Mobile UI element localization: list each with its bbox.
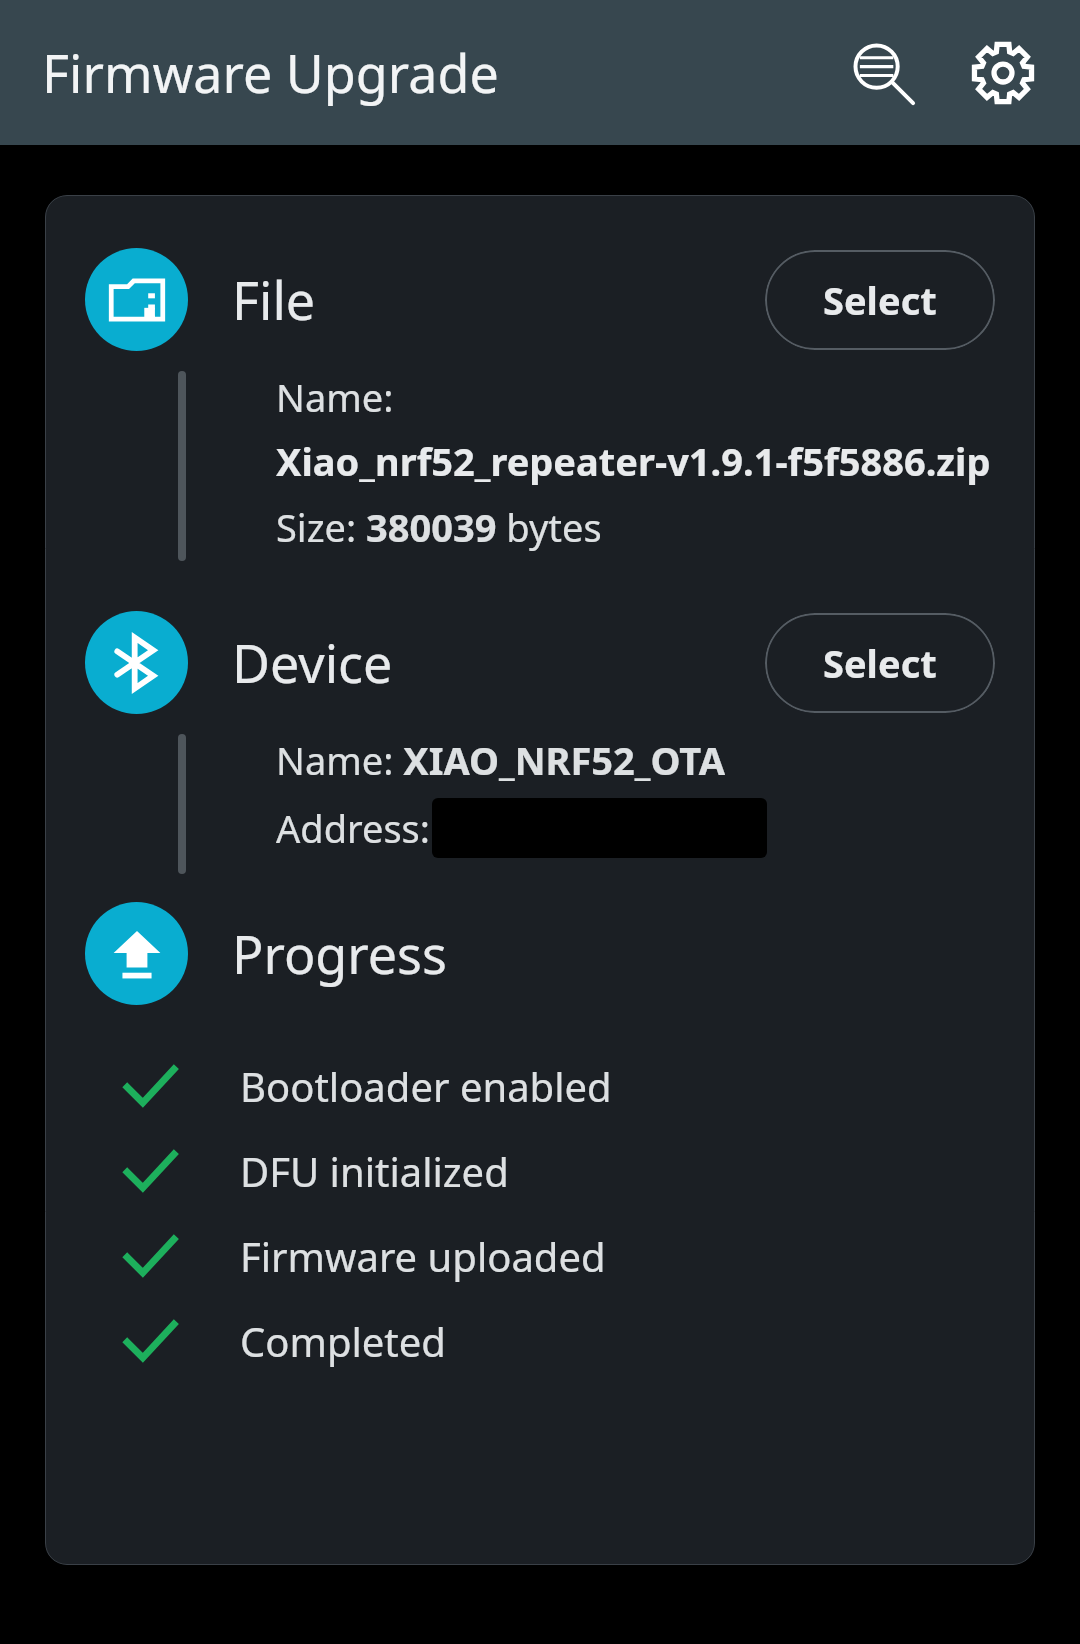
staticText: Size: 380039 bytes	[276, 501, 602, 553]
staticText: Device	[232, 627, 393, 698]
staticText: Xiao_nrf52_repeater-v1.9.1-f5f5886.zip	[276, 435, 991, 487]
staticText: Name:	[276, 371, 394, 423]
staticText: Address:	[276, 802, 430, 854]
button[interactable]: Search	[828, 18, 938, 128]
button[interactable]: DFU initialized	[45, 1128, 1035, 1213]
staticText: Firmware Upgrade	[42, 37, 499, 108]
staticText: DFU initialized	[240, 1144, 509, 1198]
button[interactable]: Settings	[948, 18, 1058, 128]
button[interactable]: Select	[765, 250, 995, 350]
button[interactable]: Firmware uploaded	[45, 1213, 1035, 1298]
staticText: Select	[823, 637, 937, 689]
staticText: Progress	[232, 918, 447, 989]
staticText: Completed	[240, 1314, 446, 1368]
button[interactable]: Bootloader enabled	[45, 1043, 1035, 1128]
button[interactable]: Completed	[45, 1298, 1035, 1383]
button[interactable]: Select	[765, 613, 995, 713]
staticText: Name: XIAO_NRF52_OTA	[276, 734, 725, 786]
staticText: File	[232, 264, 316, 335]
staticText: Firmware uploaded	[240, 1229, 606, 1283]
staticText: Bootloader enabled	[240, 1059, 612, 1113]
staticText: Select	[823, 274, 937, 326]
